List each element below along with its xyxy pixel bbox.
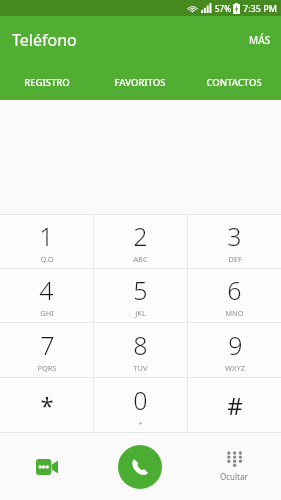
staticText: TUV — [133, 363, 148, 373]
button[interactable]: 3 — [188, 215, 281, 268]
staticText: 4 — [39, 273, 54, 307]
staticText: + — [138, 418, 143, 428]
staticText: 0 — [133, 383, 148, 417]
button[interactable]: Ocultar — [187, 433, 281, 500]
staticText: WXYZ — [225, 363, 245, 373]
staticText: DEF — [228, 254, 242, 264]
button[interactable]: REGISTRO — [0, 64, 93, 100]
staticText: REGISTRO — [24, 76, 70, 89]
button[interactable]: 6 — [188, 269, 281, 322]
staticText: 7 — [40, 328, 55, 362]
staticText: 6 — [227, 273, 242, 307]
button[interactable]: 4 — [0, 269, 93, 322]
staticText: # — [227, 389, 243, 422]
staticText: 1 — [39, 219, 54, 253]
staticText: * — [40, 389, 54, 422]
button[interactable]: 0 — [94, 378, 187, 432]
staticText: 5 — [133, 273, 148, 307]
staticText: GHI — [40, 308, 54, 318]
staticText: MÁS — [249, 33, 271, 47]
staticText: 57% — [215, 3, 231, 14]
button[interactable]: 9 — [188, 323, 281, 377]
staticText: 7:35 PM — [243, 2, 277, 14]
staticText: ABC — [133, 254, 148, 264]
button[interactable]: Videollamada — [0, 433, 93, 500]
staticText: PQRS — [37, 363, 57, 373]
button[interactable]: MÁS — [239, 25, 281, 55]
button[interactable]: 1 — [0, 215, 93, 268]
staticText: FAVORITOS — [114, 76, 166, 89]
staticText: CONTACTOS — [206, 76, 262, 89]
button[interactable]: 7 — [0, 323, 93, 377]
button[interactable]: Llamar — [118, 445, 162, 489]
button[interactable]: * — [0, 378, 93, 432]
staticText: 9 — [228, 328, 243, 362]
button[interactable]: 2 — [94, 215, 187, 268]
button[interactable]: 5 — [94, 269, 187, 322]
staticText: MNO — [225, 308, 244, 318]
staticText: Q.O — [40, 254, 54, 264]
staticText: Teléfono — [12, 29, 77, 51]
button[interactable]: CONTACTOS — [187, 64, 281, 100]
staticText: 3 — [227, 219, 242, 253]
staticText: 2 — [133, 219, 148, 253]
staticText: 8 — [133, 328, 148, 362]
button[interactable]: 8 — [94, 323, 187, 377]
button[interactable]: # — [188, 378, 281, 432]
staticText: Ocultar — [220, 471, 248, 482]
button[interactable]: FAVORITOS — [93, 64, 187, 100]
staticText: JKL — [135, 308, 146, 318]
